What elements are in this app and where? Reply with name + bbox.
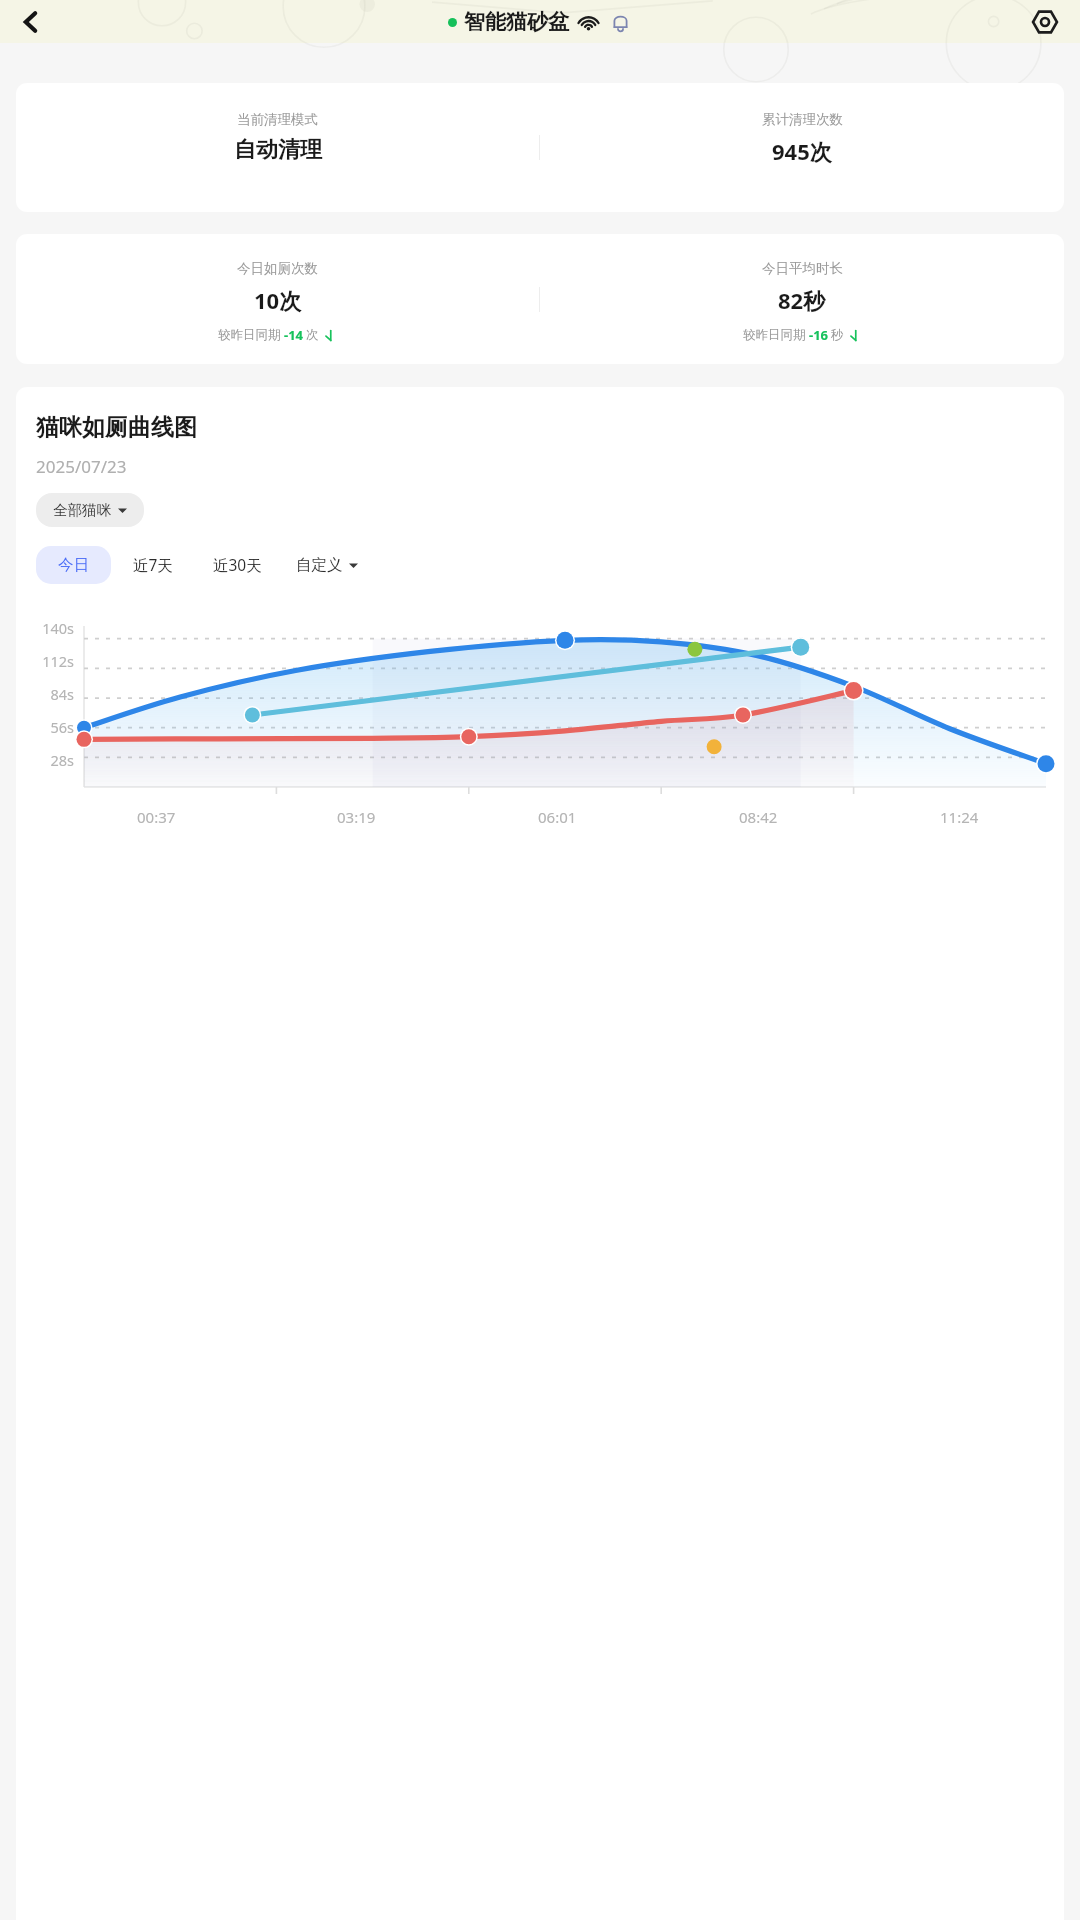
staticText: 累计清理次数 <box>762 111 843 128</box>
staticText: 08:42 <box>739 807 778 827</box>
button[interactable]: Notifications <box>607 9 633 35</box>
staticText: 猫咪如厕曲线图 <box>36 413 197 442</box>
staticText: 全部猫咪 <box>53 501 111 519</box>
staticText: 较昨日同期 <box>218 327 281 343</box>
staticText: 今日平均时长 <box>762 260 843 277</box>
staticText: 28s <box>50 750 74 770</box>
button[interactable]: 自定义 <box>280 546 366 584</box>
staticText: 56s <box>50 717 74 737</box>
staticText: 较昨日同期 <box>743 327 806 343</box>
staticText: 今日如厕次数 <box>237 260 318 277</box>
staticText: 近30天 <box>213 554 262 575</box>
staticText: -14 <box>284 326 304 344</box>
button[interactable]: Back <box>8 0 54 43</box>
staticText: 03:19 <box>337 807 376 827</box>
staticText: 82秒 <box>778 285 826 315</box>
staticText: 06:01 <box>538 807 577 827</box>
staticText: 945次 <box>772 136 832 166</box>
staticText: 140s <box>42 618 74 638</box>
staticText: 今日 <box>58 555 89 575</box>
staticText: 近7天 <box>133 554 173 575</box>
staticText: 当前清理模式 <box>237 111 318 128</box>
button[interactable]: 当前清理模式 <box>16 83 1064 212</box>
staticText: 00:37 <box>137 807 176 827</box>
staticText: 2025/07/23 <box>36 455 127 478</box>
staticText: 10次 <box>254 285 302 315</box>
staticText: 11:24 <box>940 807 979 827</box>
staticText: 次 <box>306 327 319 343</box>
staticText: 秒 <box>831 327 844 343</box>
button[interactable]: 近30天 <box>195 545 280 584</box>
button[interactable]: 全部猫咪 <box>36 493 144 527</box>
staticText: 智能猫砂盆 <box>464 9 569 35</box>
button[interactable]: 今日 <box>36 546 111 584</box>
button[interactable]: Settings <box>1022 0 1068 43</box>
button[interactable]: 近7天 <box>111 545 195 584</box>
staticText: -16 <box>809 326 829 344</box>
staticText: 112s <box>42 651 74 671</box>
button[interactable]: 今日如厕次数 <box>16 234 1064 364</box>
staticText: 自定义 <box>296 555 343 575</box>
staticText: 自动清理 <box>234 136 322 164</box>
other: Wi-Fi <box>578 12 599 33</box>
staticText: 84s <box>50 684 74 704</box>
